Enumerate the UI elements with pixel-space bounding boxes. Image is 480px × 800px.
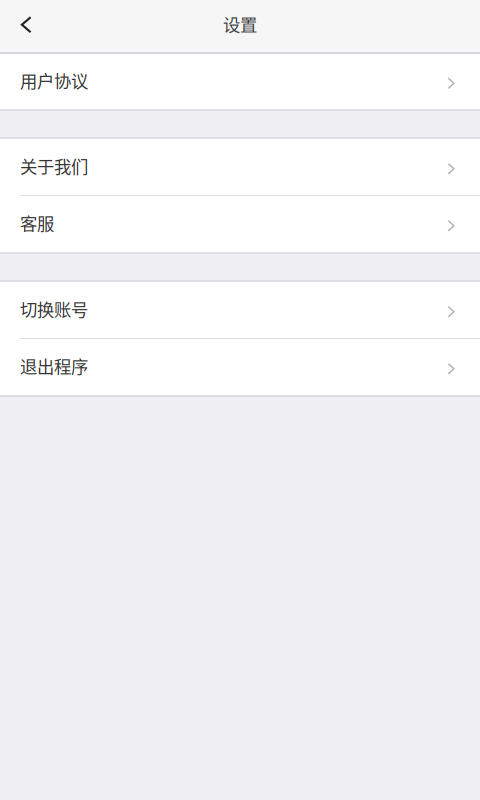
staticText: 设置: [223, 11, 257, 37]
staticText: 用户协议: [20, 68, 88, 93]
button[interactable]: 关于我们: [0, 139, 480, 195]
staticText: 切换账号: [20, 296, 88, 321]
button[interactable]: 退出程序: [0, 339, 480, 395]
staticText: 关于我们: [20, 153, 88, 178]
button[interactable]: 切换账号: [0, 282, 480, 338]
staticText: 退出程序: [20, 353, 88, 378]
button[interactable]: Back: [0, 0, 52, 51]
button[interactable]: 用户协议: [0, 54, 480, 109]
staticText: 客服: [20, 210, 54, 235]
button[interactable]: 客服: [0, 196, 480, 252]
button[interactable]: 设置: [180, 0, 300, 50]
